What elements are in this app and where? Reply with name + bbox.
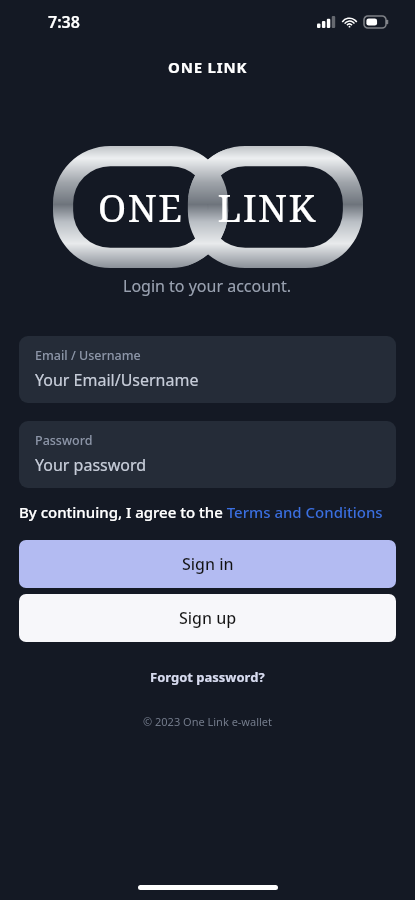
staticText: ONE LINK (98, 181, 317, 233)
staticText: Login to your account. (123, 275, 292, 297)
button[interactable]: Password (19, 421, 396, 488)
button[interactable]: Forgot password? (144, 662, 271, 692)
staticText: Your password (35, 454, 147, 476)
button[interactable]: Email / Username (19, 336, 396, 403)
staticText: © 2023 One Link e-wallet (143, 714, 273, 729)
staticText: ONE LINK (168, 57, 248, 77)
staticText: Sign in (182, 553, 234, 575)
button[interactable]: By continuing, I agree to the Terms and … (19, 502, 383, 522)
staticText: 7:38 (48, 11, 80, 33)
staticText: Password (35, 432, 93, 449)
staticText: Your Email/Username (35, 369, 199, 391)
button[interactable]: Sign up (19, 594, 396, 642)
staticText: Email / Username (35, 347, 141, 364)
staticText: Sign up (179, 607, 237, 629)
staticText: Forgot password? (150, 668, 265, 686)
button[interactable]: Sign in (19, 540, 396, 588)
